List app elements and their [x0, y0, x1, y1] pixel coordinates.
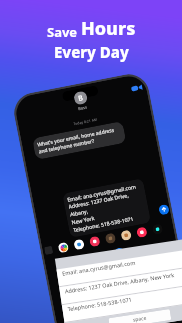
button[interactable]: App	[105, 232, 116, 244]
button[interactable]: App Store	[44, 246, 53, 255]
staticText: Email: ana.cyrus@gmail.com	[62, 259, 136, 277]
button[interactable]: App	[89, 236, 101, 247]
staticText: Email: ana.cyrus@gmail.com Address: 1237…	[67, 182, 147, 234]
staticText: Today 8:21 AM	[19, 106, 151, 137]
button[interactable]: App	[120, 229, 132, 241]
button[interactable]: space	[108, 309, 171, 323]
button[interactable]: Address: 1237 Oak Drive, Albany, New Yor…	[59, 265, 182, 305]
staticText: Save	[47, 23, 81, 41]
button[interactable]: Photos	[57, 242, 69, 253]
button[interactable]: Telephone: 518-538-1071	[62, 283, 182, 323]
button[interactable]: App	[152, 223, 163, 235]
button[interactable]: Video call	[130, 82, 143, 94]
staticText: Hours	[81, 16, 136, 41]
button[interactable]: Email: ana.cyrus@gmail.com	[56, 247, 182, 287]
staticText: Address: 1237 Oak Drive, Albany, New Yor…	[64, 271, 175, 294]
staticText: B	[77, 93, 84, 104]
staticText: Boss	[78, 104, 87, 111]
button[interactable]: Send	[158, 204, 170, 215]
button[interactable]: App	[136, 226, 148, 238]
staticText: Every Day	[54, 42, 129, 62]
button[interactable]: Add	[114, 247, 125, 259]
staticText: What's your email, home address and tele…	[37, 127, 117, 155]
staticText: Telephone: 518-538-1071	[67, 296, 132, 312]
button[interactable]: App	[73, 239, 85, 250]
staticText: space	[132, 315, 147, 323]
